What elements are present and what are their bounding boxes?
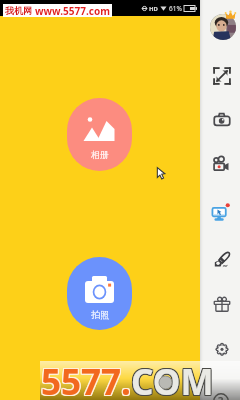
- staticText: 我机网: [5, 5, 32, 16]
- staticText: 5577.: [40, 358, 130, 397]
- button[interactable]: Profile: [210, 14, 236, 40]
- staticText: ?: [218, 393, 224, 400]
- button[interactable]: Brush: [213, 251, 231, 269]
- staticText: 拍照: [91, 309, 109, 320]
- button[interactable]: Screenshot: [213, 111, 231, 129]
- button[interactable]: Record video: [213, 155, 231, 173]
- staticText: www.5577.com: [35, 4, 110, 17]
- staticText: 5577.: [40, 357, 130, 396]
- staticText: HD: [149, 5, 158, 13]
- staticText: COM: [132, 357, 215, 396]
- staticText: COM: [130, 358, 213, 397]
- staticText: 相册: [91, 149, 109, 160]
- button[interactable]: 相册: [67, 98, 132, 171]
- staticText: 5577.: [42, 358, 132, 397]
- staticText: COM: [130, 359, 213, 398]
- staticText: COM: [131, 359, 214, 398]
- staticText: COM: [132, 359, 215, 398]
- staticText: COM: [131, 358, 214, 397]
- staticText: 5577.: [42, 357, 132, 396]
- staticText: 61%: [169, 4, 182, 13]
- button[interactable]: Fullscreen: [213, 67, 231, 85]
- staticText: 5577.: [41, 358, 131, 397]
- staticText: 5577.: [41, 359, 131, 398]
- staticText: 5577.: [42, 359, 132, 398]
- button[interactable]: Gift: [213, 295, 231, 313]
- staticText: COM: [130, 357, 213, 396]
- button[interactable]: Settings: [213, 340, 231, 358]
- button[interactable]: 拍照: [67, 257, 132, 330]
- staticText: 5577.: [41, 357, 131, 396]
- staticText: 5577.: [40, 359, 130, 398]
- staticText: COM: [132, 358, 215, 397]
- staticText: COM: [131, 357, 214, 396]
- button[interactable]: Remote control: [211, 204, 229, 222]
